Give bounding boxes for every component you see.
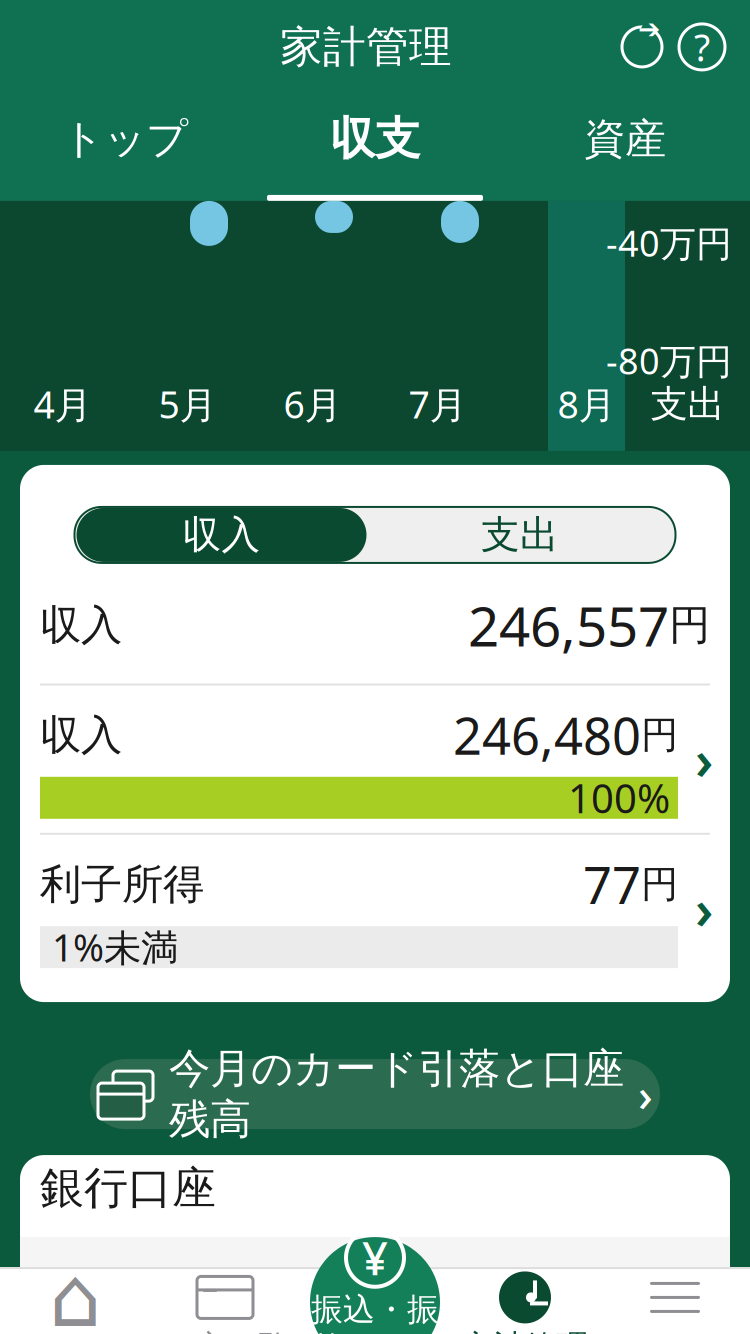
staticText: › [695,724,713,794]
button[interactable]: 支出 [366,508,673,562]
button[interactable]: 収入 [76,508,366,562]
staticText: 家計管理 [280,21,452,73]
staticText: 資産 [584,113,666,164]
staticText: 支出 [481,511,559,559]
staticText: ➔ [638,14,660,44]
staticText: 246,480 [453,701,641,769]
staticText: 5月 [158,379,216,429]
button[interactable]: 資産 [500,83,750,201]
staticText: 円 [669,600,710,651]
staticText: 口座一覧 [161,1327,289,1334]
staticText: -40万円 [606,219,732,267]
staticText: 1%未満 [52,922,178,972]
staticText: 円 [641,861,678,907]
staticText: 家計管理 [461,1327,589,1334]
button[interactable]: 更新 [612,17,672,77]
button[interactable]: ⌂ [0,1267,150,1334]
staticText: 振込・振替 [311,1290,439,1334]
staticText: 銀行口座 [40,1161,216,1215]
staticText: 収入 [182,511,260,559]
staticText: 収入 [40,600,122,651]
staticText: 収支 [330,111,420,167]
staticText: 今月のカード引落と口座残高 [169,1043,624,1145]
button[interactable]: ヘルプ [672,17,732,77]
button[interactable]: 口座一覧 [150,1267,300,1334]
button[interactable]: 家計管理 [450,1267,600,1334]
staticText: 6月 [283,379,341,429]
staticText: 収入 [40,710,122,761]
staticText: -80万円 [606,337,732,384]
staticText: 4月 [33,379,91,429]
button[interactable]: ¥ [310,1237,440,1334]
staticText: › [695,873,713,944]
staticText: 77 [583,851,641,918]
staticText: 8月 [557,379,615,429]
staticText: 支出 [650,381,724,427]
staticText: 円 [641,712,678,758]
button[interactable]: メニュー [600,1267,750,1334]
staticText: ? [694,22,710,72]
staticText: 利子所得 [40,859,204,910]
staticText: 7月 [408,379,466,429]
staticText: トップ [62,113,188,164]
staticText: 246,557 [468,589,669,661]
button[interactable]: 利子所得 [20,835,730,982]
staticText: ⌂ [49,1250,101,1334]
staticText: 100% [568,771,670,824]
button[interactable]: 収入 [20,685,730,833]
button[interactable]: 今月のカード引落と口座残高 [90,1059,660,1129]
staticText: ¥ [362,1228,388,1288]
staticText: › [638,1064,653,1124]
button[interactable]: トップ [0,83,250,201]
button[interactable]: 収支 [250,83,500,201]
